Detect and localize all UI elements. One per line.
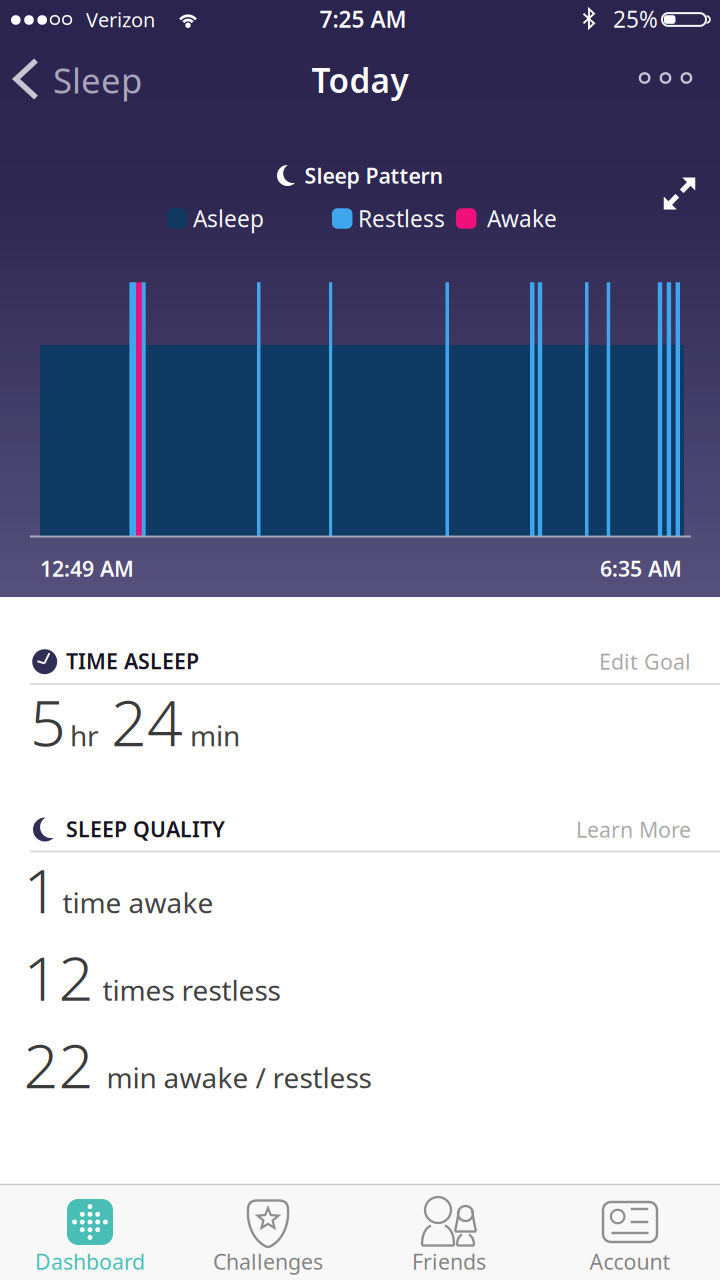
- staticText: min: [190, 717, 240, 754]
- staticText: 12:49 AM: [40, 554, 134, 583]
- staticText: 6:35 AM: [600, 554, 682, 583]
- staticText: Sleep: [53, 57, 142, 103]
- staticText: time awake: [62, 884, 213, 921]
- staticText: TIME ASLEEP: [66, 647, 199, 675]
- staticText: times restless: [102, 971, 280, 1008]
- staticText: 7:25 AM: [319, 4, 406, 34]
- staticText: 22: [23, 1024, 93, 1105]
- staticText: 24: [111, 680, 183, 764]
- staticText: Account: [589, 1247, 670, 1276]
- staticText: 1: [23, 849, 58, 930]
- staticText: Today: [311, 58, 408, 102]
- staticText: SLEEP QUALITY: [66, 815, 225, 843]
- staticText: 5: [30, 680, 66, 764]
- staticText: Awake: [487, 203, 557, 233]
- staticText: Learn More: [576, 815, 691, 844]
- staticText: Asleep: [193, 203, 264, 233]
- staticText: Challenges: [213, 1247, 323, 1276]
- staticText: 25%: [613, 4, 658, 34]
- staticText: Restless: [358, 203, 445, 233]
- staticText: Sleep Pattern: [304, 161, 443, 190]
- staticText: Verizon: [86, 6, 155, 33]
- staticText: hr: [70, 717, 99, 754]
- staticText: Edit Goal: [599, 647, 691, 676]
- staticText: Dashboard: [35, 1247, 145, 1276]
- staticText: 12: [23, 936, 93, 1018]
- staticText: Friends: [412, 1247, 486, 1276]
- staticText: min awake / restless: [106, 1059, 371, 1096]
